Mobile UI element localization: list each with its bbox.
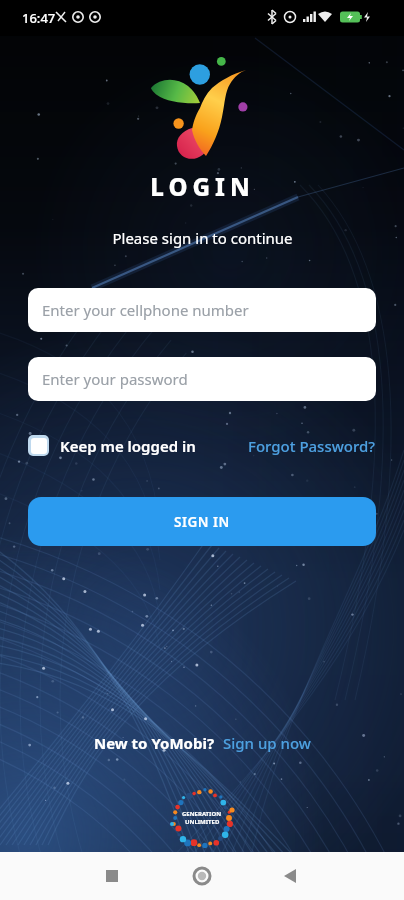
staticText: Please sign in to continue xyxy=(112,228,293,248)
staticText: New to YoMobi? xyxy=(94,733,215,753)
staticText: LOGIN xyxy=(150,170,255,203)
staticText: UNLIMITED xyxy=(185,818,220,826)
staticText: Forgot Password? xyxy=(248,436,376,456)
staticText: 16:47 xyxy=(22,9,56,27)
staticText: GENERATION xyxy=(182,810,222,818)
staticText: Enter your password xyxy=(42,369,188,389)
staticText: Sign up now xyxy=(223,733,311,753)
staticText: Enter your cellphone number xyxy=(42,300,249,320)
staticText: SIGN IN xyxy=(174,513,230,531)
staticText: Keep me logged in xyxy=(60,436,196,456)
